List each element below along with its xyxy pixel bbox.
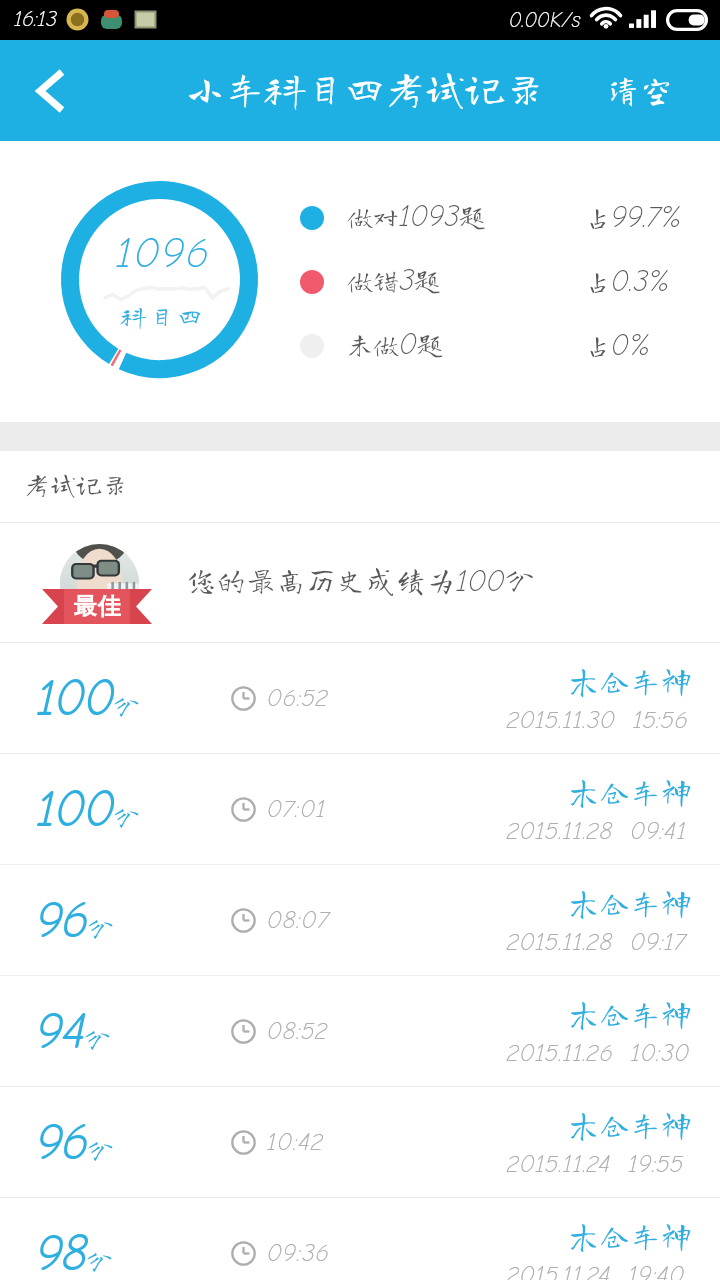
staticText: 做错3题 (347, 263, 441, 298)
staticText: 分 (87, 914, 114, 941)
staticText: 2015.11.24 19:55 (507, 1149, 684, 1178)
staticText: 96 (36, 890, 88, 950)
button[interactable]: 94 (0, 976, 720, 1087)
staticText: 占0.3% (585, 264, 670, 299)
staticText: 分 (113, 692, 140, 719)
staticText: 做对1093题 (347, 199, 486, 234)
staticText: 98 (36, 1223, 87, 1280)
staticText: 考试记录 (24, 471, 129, 497)
staticText: 96 (36, 1112, 88, 1172)
button[interactable]: 100 (0, 754, 720, 865)
staticText: 09:36 (267, 1238, 330, 1267)
staticText: 06:52 (267, 683, 329, 712)
staticText: 1096 (116, 228, 211, 277)
staticText: 木仓车神 (568, 998, 692, 1029)
staticText: 2015.11.30 15:56 (507, 705, 689, 734)
button[interactable]: Back (0, 40, 104, 141)
staticText: 100 (36, 668, 114, 728)
staticText: 未做0题 (347, 327, 443, 362)
staticText: 占0% (585, 328, 651, 363)
staticText: 您的最高历史成绩为100分 (186, 563, 535, 599)
staticText: 木仓车神 (568, 665, 692, 696)
staticText: 0.00K/s (509, 8, 581, 32)
staticText: 2015.11.26 10:30 (507, 1038, 690, 1067)
staticText: 08:07 (267, 905, 330, 934)
staticText: 小车科目四考试记录 (185, 68, 545, 108)
staticText: 10:42 (267, 1127, 325, 1156)
staticText: 07:01 (267, 794, 327, 823)
staticText: 最佳 (73, 592, 121, 621)
staticText: 木仓车神 (568, 776, 692, 807)
staticText: 16:13 (14, 6, 58, 31)
staticText: 木仓车神 (568, 1220, 692, 1251)
staticText: 科目四 (121, 303, 206, 328)
staticText: 占99.7% (585, 200, 682, 235)
staticText: 08:52 (267, 1016, 329, 1045)
button[interactable]: 最佳 (0, 523, 720, 643)
staticText: 2015.11.28 09:17 (507, 927, 687, 956)
button[interactable]: 100 (0, 643, 720, 754)
button[interactable]: 96 (0, 865, 720, 976)
staticText: 木仓车神 (568, 887, 692, 918)
staticText: 分 (86, 1247, 113, 1274)
staticText: 分 (84, 1025, 111, 1052)
staticText: 清空 (607, 73, 673, 106)
staticText: 94 (36, 1001, 85, 1061)
staticText: 100 (36, 779, 114, 839)
staticText: 2015.11.28 09:41 (507, 816, 687, 845)
staticText: 木仓车神 (568, 1109, 692, 1140)
button[interactable]: 96 (0, 1087, 720, 1198)
button[interactable]: 清空 (579, 52, 720, 129)
staticText: 2015.11.24 19:40 (507, 1260, 685, 1280)
staticText: 分 (113, 803, 140, 830)
button[interactable]: 98 (0, 1198, 720, 1280)
staticText: 分 (87, 1136, 114, 1163)
